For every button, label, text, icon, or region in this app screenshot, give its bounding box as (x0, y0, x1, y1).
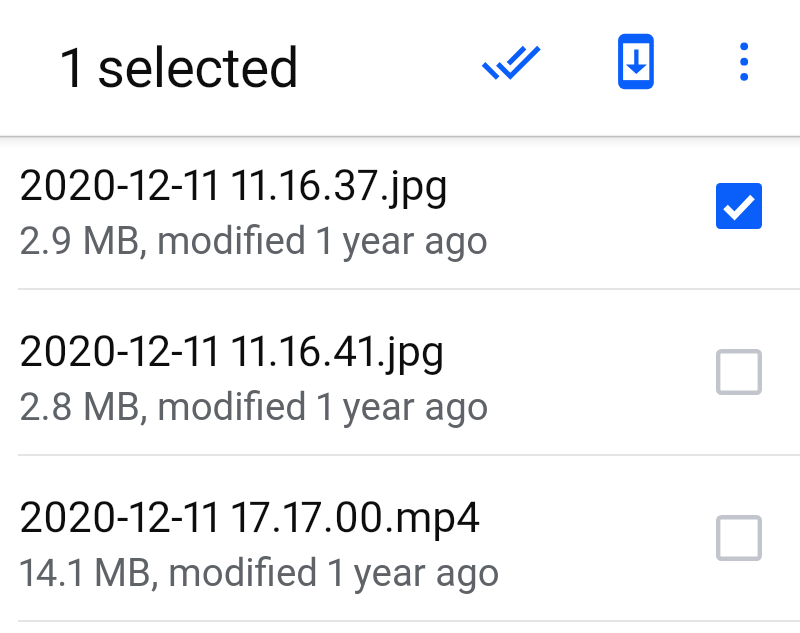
button[interactable]: Not selected, tap to select (716, 515, 762, 561)
button[interactable]: Select all (476, 26, 546, 96)
staticText: 14.1 MB, modified 1 year ago (19, 550, 500, 595)
staticText: 2020-12-11 11.16.41.jpg (19, 326, 445, 376)
staticText: 2020-12-11 11.16.37.jpg (19, 160, 449, 210)
button[interactable]: More options (710, 26, 780, 96)
button[interactable]: Save to device (601, 26, 671, 96)
staticText: 2.8 MB, modified 1 year ago (19, 384, 489, 429)
button[interactable]: 2020-12-11 17.17.00.mp4 (0, 469, 800, 619)
button[interactable]: 2020-12-11 11.16.41.jpg (0, 303, 800, 453)
staticText: 2020-12-11 17.17.00.mp4 (19, 492, 481, 542)
staticText: 1 selected (60, 36, 300, 100)
button[interactable]: Selected, tap to deselect (716, 183, 762, 229)
button[interactable]: Not selected, tap to select (716, 349, 762, 395)
button[interactable]: 2020-12-11 11.16.37.jpg (0, 137, 800, 287)
staticText: 2.9 MB, modified 1 year ago (19, 218, 489, 263)
